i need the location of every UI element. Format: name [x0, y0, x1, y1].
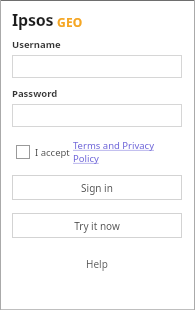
button[interactable]: Sign in [12, 175, 182, 200]
staticText: Password [12, 87, 58, 100]
button[interactable]: Accept terms checkbox [16, 145, 30, 159]
staticText: Username [12, 38, 61, 51]
staticText: I accept [35, 146, 73, 159]
staticText: Ipsos [12, 9, 54, 31]
staticText: Try it now [74, 219, 120, 233]
staticText: GEO [57, 14, 83, 30]
button[interactable] [12, 104, 182, 127]
button[interactable] [12, 55, 182, 78]
staticText: Sign in [81, 181, 113, 195]
button[interactable]: Help [78, 255, 116, 273]
button[interactable]: Try it now [12, 213, 182, 238]
button[interactable]: Terms and Privacy Policy [73, 139, 182, 165]
